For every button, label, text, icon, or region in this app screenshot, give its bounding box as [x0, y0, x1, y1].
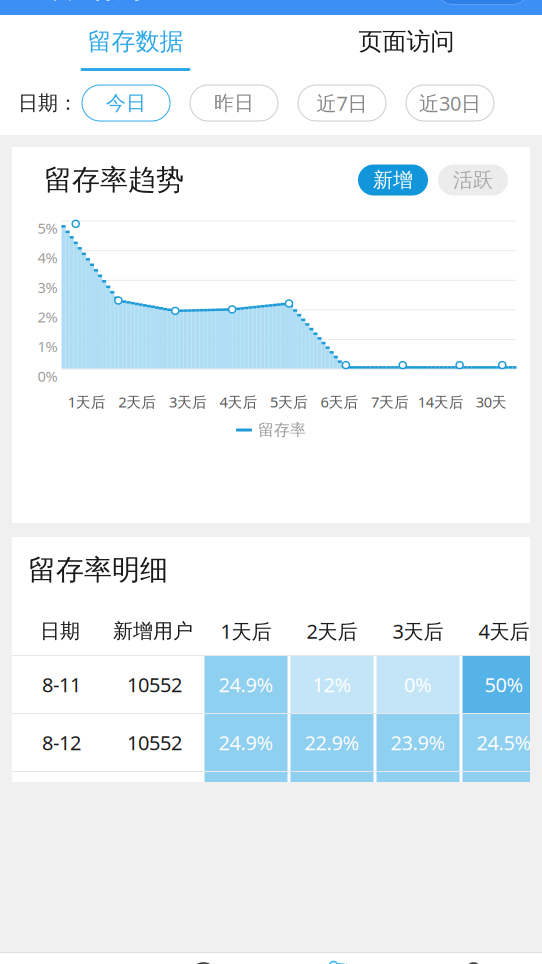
staticText: 留存数据	[87, 27, 183, 56]
staticText: 24.5%	[476, 729, 531, 756]
button[interactable]: 用户画像	[406, 952, 541, 964]
button[interactable]: 用户来源	[136, 952, 271, 964]
staticText: 2%	[37, 307, 57, 327]
staticText: 0%	[37, 366, 57, 386]
button[interactable]: 昨日	[190, 85, 278, 121]
button[interactable]: 更多	[437, 0, 482, 4]
staticText: 3天后	[169, 392, 207, 412]
staticText: 昨日	[214, 91, 254, 115]
staticText: 10552	[127, 671, 182, 698]
staticText: 页面访问	[358, 27, 454, 56]
staticText: 4天后	[478, 618, 529, 644]
staticText: 新增	[373, 168, 413, 192]
staticText: 2天后	[118, 392, 156, 412]
button[interactable]: 数据概括	[1, 952, 136, 964]
staticText: 8-12	[42, 729, 81, 756]
staticText: 3天后	[392, 618, 443, 644]
staticText: 22.9%	[304, 729, 359, 756]
staticText: 1%	[37, 337, 57, 356]
staticText: 近7日	[316, 90, 367, 116]
staticText: 10552	[127, 729, 182, 756]
staticText: 1天后	[220, 618, 271, 644]
button[interactable]: 新增	[358, 164, 428, 195]
staticText: 7天后	[371, 392, 409, 412]
staticText: 50%	[484, 671, 523, 698]
button[interactable]: 留存数据	[0, 15, 271, 71]
staticText: 5天后	[270, 392, 308, 412]
staticText: 日期	[40, 619, 80, 643]
staticText: 12%	[312, 671, 351, 698]
staticText: 用户行为	[42, 0, 142, 4]
button[interactable]: 活跃	[438, 164, 508, 195]
staticText: 3%	[37, 277, 57, 297]
staticText: 24.9%	[218, 729, 273, 756]
staticText: 0%	[404, 671, 432, 698]
staticText: 24.9%	[218, 671, 273, 698]
staticText: 4%	[37, 248, 57, 267]
staticText: 23.9%	[390, 729, 445, 756]
staticText: 留存率趋势	[44, 163, 184, 197]
button[interactable]: 今日	[82, 85, 170, 121]
button[interactable]: 页面访问	[271, 15, 542, 71]
staticText: 2天后	[306, 618, 357, 644]
staticText: 6天后	[321, 392, 359, 412]
staticText: 新增用户	[113, 619, 193, 643]
staticText: 近30日	[419, 90, 481, 116]
staticText: 留存率明细	[28, 553, 168, 587]
button[interactable]: 关闭	[483, 0, 528, 4]
staticText: 4天后	[219, 392, 257, 412]
staticText: 5%	[37, 218, 57, 238]
staticText: 8-11	[42, 671, 81, 698]
staticText: 留存率	[258, 420, 306, 440]
staticText: 活跃	[453, 168, 493, 192]
staticText: 日期：	[18, 91, 78, 115]
staticText: 1天后	[68, 392, 106, 412]
staticText: 今日	[106, 91, 146, 115]
button[interactable]: 近7日	[298, 85, 386, 121]
button[interactable]: 近30日	[406, 85, 494, 121]
button[interactable]: 用户行为	[271, 952, 406, 964]
staticText: 14天后	[418, 392, 464, 412]
staticText: 30天	[476, 392, 507, 412]
